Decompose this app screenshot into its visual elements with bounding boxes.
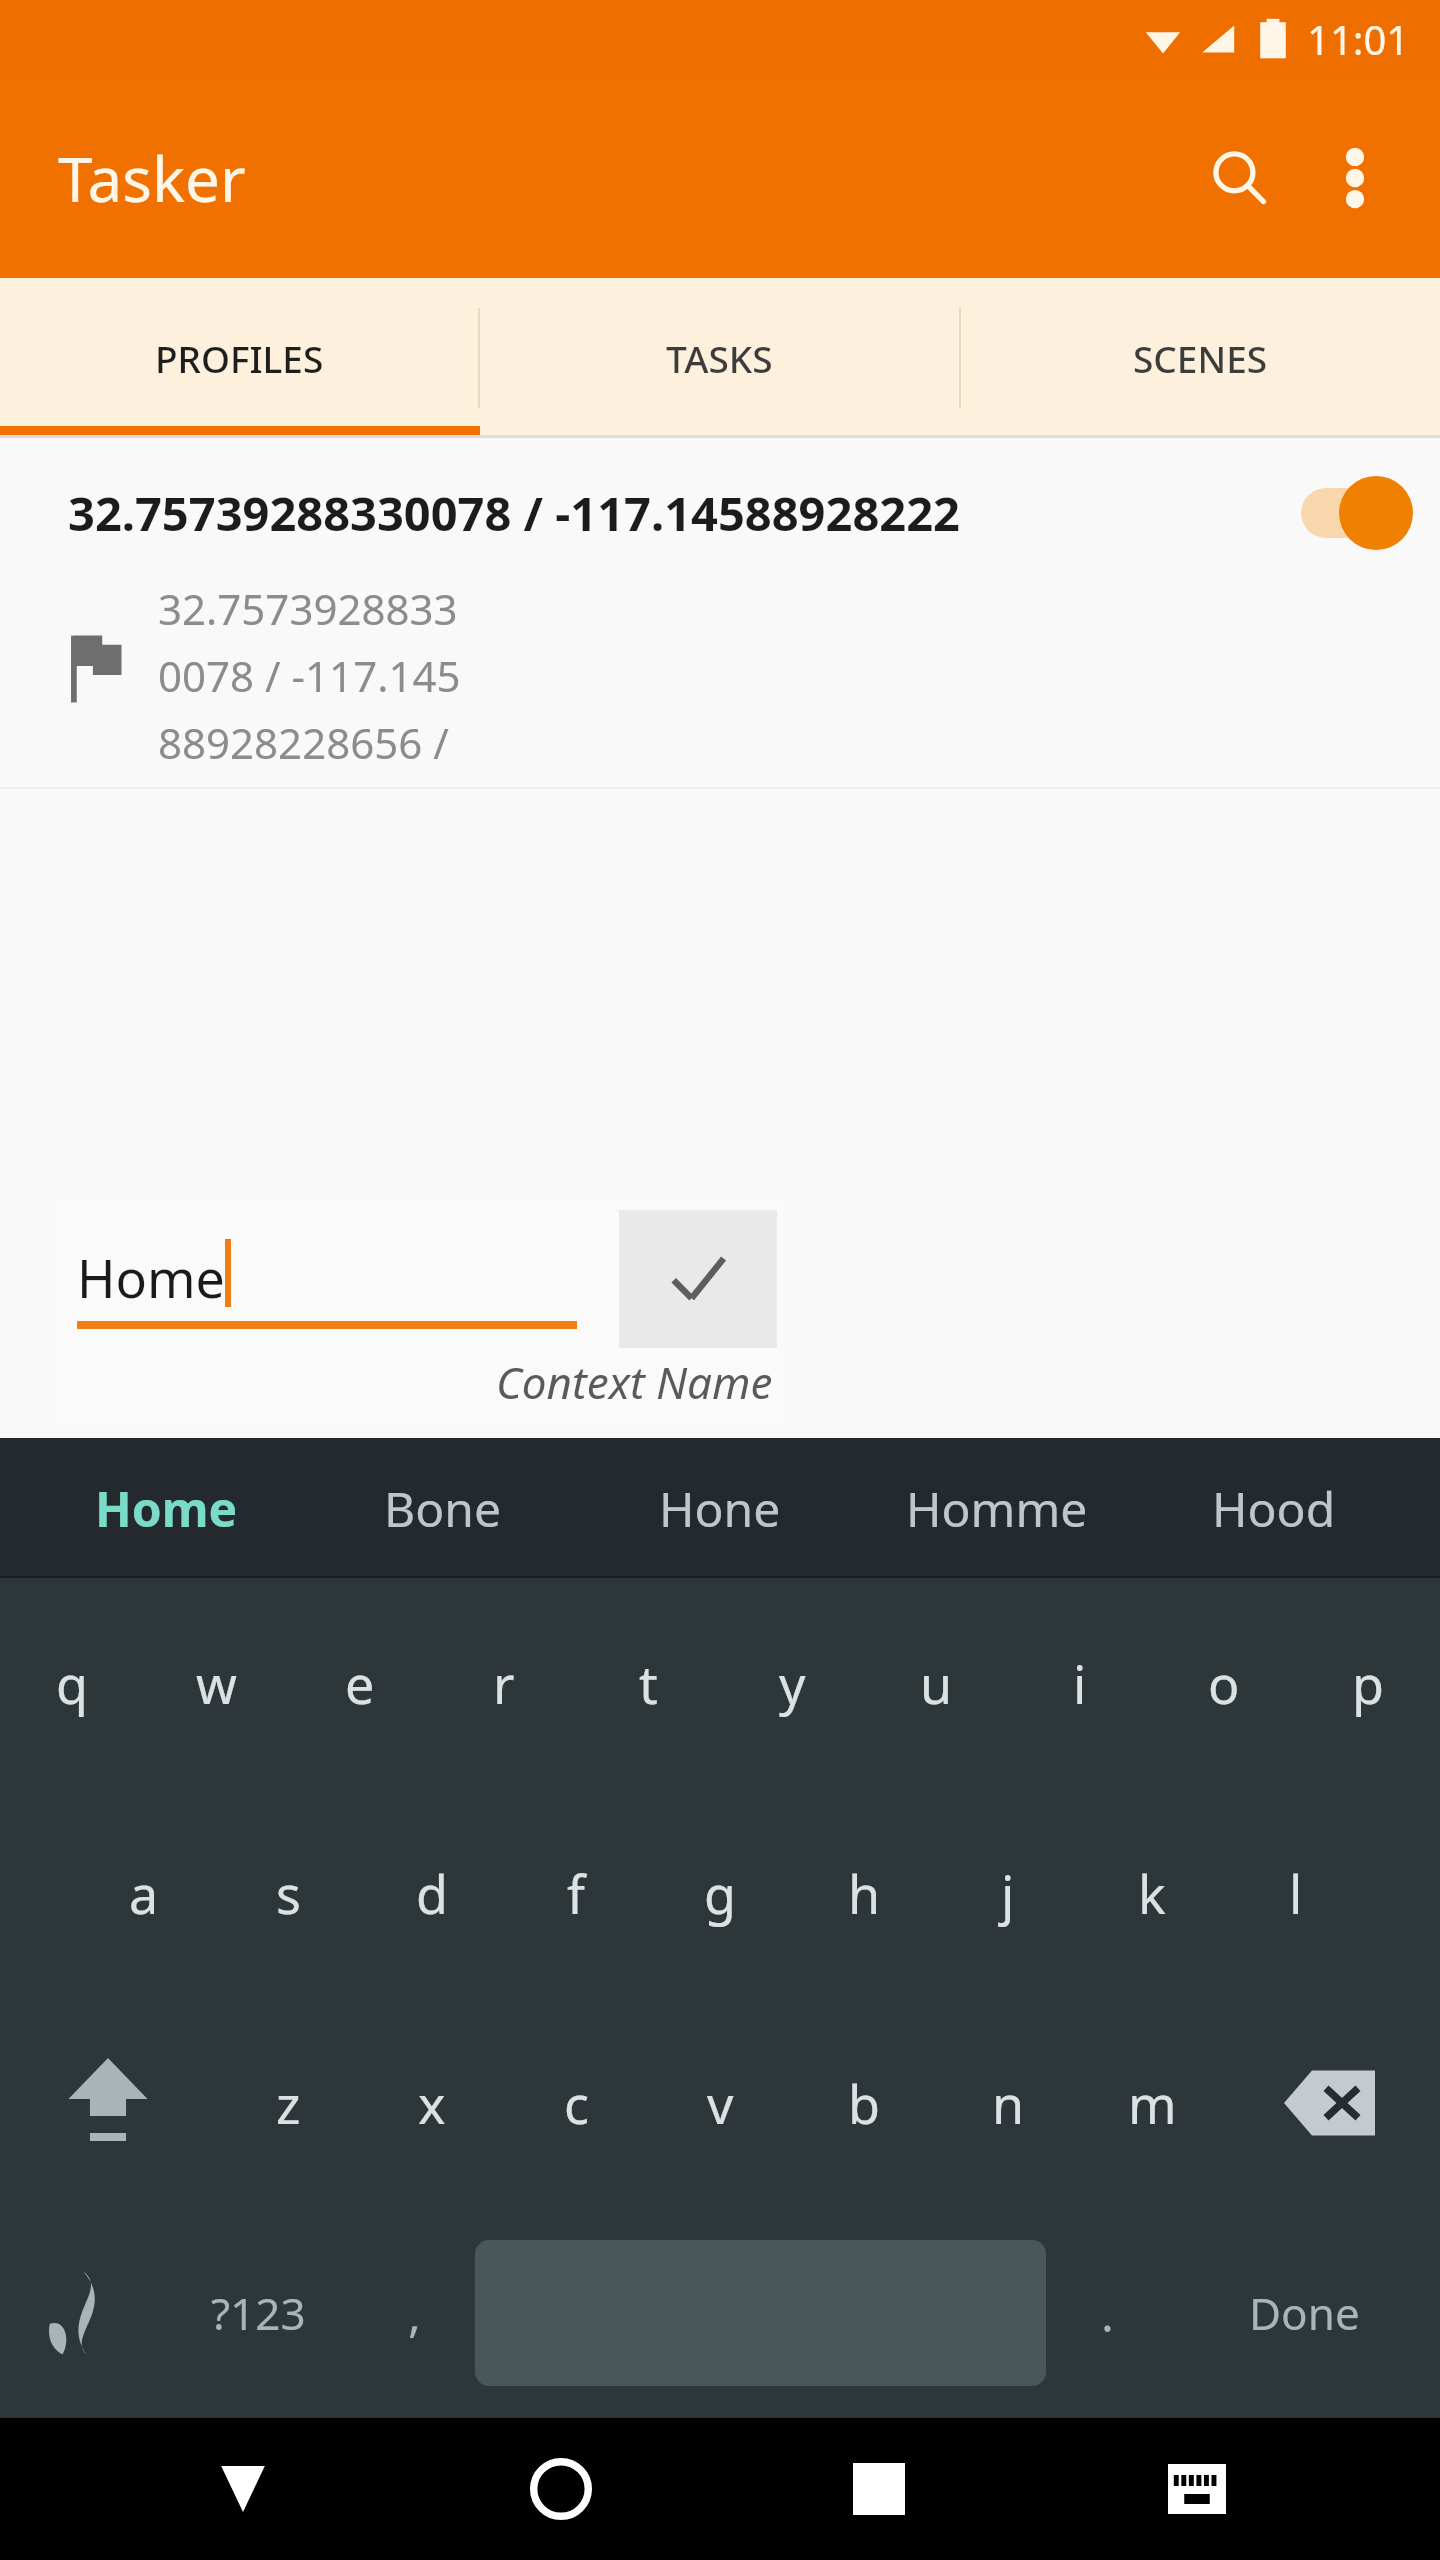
staticText: p [1352, 1648, 1384, 1719]
button[interactable]: . [1046, 2208, 1168, 2418]
staticText: e [345, 1648, 375, 1719]
button[interactable]: Done [1168, 2208, 1440, 2418]
button[interactable]: g [648, 1788, 792, 1998]
button[interactable]: h [792, 1788, 936, 1998]
button[interactable]: SCENES [961, 278, 1440, 438]
staticText: 32.7573928833 [158, 580, 458, 637]
button[interactable]: Homme [858, 1438, 1135, 1578]
button[interactable]: Home [486, 2418, 636, 2560]
staticText: 0078 / -117.145 [158, 647, 461, 704]
staticText: 88928228656 / [158, 714, 449, 771]
button[interactable]: Recent apps [804, 2418, 954, 2560]
staticText: TASKS [666, 333, 773, 383]
button[interactable]: o [1152, 1578, 1296, 1788]
button[interactable]: y [720, 1578, 864, 1788]
staticText: y [779, 1648, 806, 1719]
button[interactable]: r [432, 1578, 576, 1788]
staticText: f [567, 1858, 585, 1929]
staticText: Hood [1212, 1476, 1336, 1541]
button[interactable]: t [576, 1578, 720, 1788]
button[interactable]: ?123 [163, 2208, 353, 2418]
button[interactable]: m [1080, 1998, 1224, 2208]
button[interactable]: n [936, 1998, 1080, 2208]
staticText: 32.75739288330078 / -117.14588928222 [68, 481, 1270, 545]
button[interactable]: More options [1300, 123, 1410, 233]
staticText: s [276, 1858, 301, 1929]
button[interactable]: d [360, 1788, 504, 1998]
staticText: m [1128, 2068, 1177, 2139]
button[interactable]: v [648, 1998, 792, 2208]
button[interactable]: k [1080, 1788, 1224, 1998]
button[interactable]: Hone [581, 1438, 858, 1578]
button[interactable]: e [288, 1578, 432, 1788]
button[interactable]: x [360, 1998, 504, 2208]
button[interactable]: 32.75739288330078 / -117.14588928222 [0, 458, 1440, 568]
staticText: g [704, 1858, 736, 1929]
staticText: , [408, 2281, 421, 2346]
button[interactable]: u [864, 1578, 1008, 1788]
staticText: t [639, 1648, 658, 1719]
button[interactable]: PROFILES [0, 278, 478, 438]
staticText: x [418, 2068, 446, 2139]
staticText: b [848, 2068, 880, 2139]
staticText: j [1001, 1858, 1015, 1929]
button[interactable]: Hide keyboard [168, 2418, 318, 2560]
button[interactable]: i [1008, 1578, 1152, 1788]
staticText: Home [95, 1476, 238, 1541]
button[interactable]: l [1224, 1788, 1368, 1998]
staticText: h [848, 1858, 881, 1929]
button[interactable]: Accept [619, 1210, 777, 1348]
button[interactable]: Search [1180, 118, 1300, 238]
staticText: Tasker [58, 136, 246, 220]
staticText: u [920, 1648, 953, 1719]
staticText: Homme [906, 1476, 1088, 1541]
staticText: Done [1249, 2283, 1360, 2343]
staticText: Context Name [496, 1352, 773, 1412]
staticText: SCENES [1133, 333, 1268, 383]
button[interactable]: c [504, 1998, 648, 2208]
staticText: d [416, 1858, 448, 1929]
button[interactable]: w [144, 1578, 288, 1788]
button[interactable]: s [216, 1788, 360, 1998]
button[interactable]: Switch keyboard [1122, 2418, 1272, 2560]
button[interactable]: Shift [0, 1998, 216, 2208]
button[interactable]: q [0, 1578, 144, 1788]
button[interactable]: z [216, 1998, 360, 2208]
button[interactable]: TASKS [480, 278, 959, 438]
button[interactable]: Backspace [1224, 1998, 1440, 2208]
button[interactable]: Voice or gesture input [0, 2208, 163, 2418]
staticText: l [1289, 1858, 1303, 1929]
button[interactable]: Bone [304, 1438, 581, 1578]
staticText: v [707, 2068, 734, 2139]
button[interactable]: Hood [1135, 1438, 1412, 1578]
staticText: r [493, 1648, 515, 1719]
staticText: 11:01 [1307, 12, 1410, 66]
staticText: i [1073, 1648, 1087, 1719]
button[interactable]: b [792, 1998, 936, 2208]
button[interactable]: p [1296, 1578, 1440, 1788]
staticText: o [1208, 1648, 1240, 1719]
staticText: Home [77, 1242, 225, 1313]
staticText: q [56, 1648, 88, 1719]
button[interactable]: j [936, 1788, 1080, 1998]
button[interactable]: , [353, 2208, 475, 2418]
staticText: k [1138, 1858, 1166, 1929]
button[interactable]: Home [28, 1438, 304, 1578]
staticText: w [196, 1648, 237, 1719]
button[interactable]: Add profile [1186, 1644, 1376, 1834]
button[interactable]: a [72, 1788, 216, 1998]
staticText: a [129, 1858, 159, 1929]
button[interactable] [1270, 458, 1440, 568]
staticText: . [1101, 2281, 1114, 2346]
button[interactable]: f [504, 1788, 648, 1998]
staticText: ?123 [211, 2283, 306, 2343]
staticText: Bone [384, 1476, 501, 1541]
staticText: Hone [659, 1476, 781, 1541]
staticText: c [564, 2068, 589, 2139]
staticText: n [992, 2068, 1025, 2139]
staticText: PROFILES [155, 333, 324, 383]
staticText: z [276, 2068, 301, 2139]
